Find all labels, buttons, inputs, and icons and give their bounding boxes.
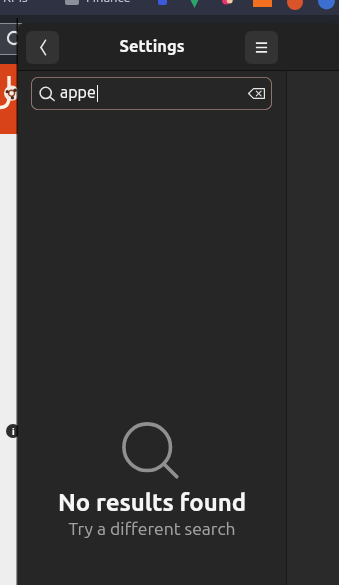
staticText: Try a different search xyxy=(52,519,252,539)
button[interactable]: Menu xyxy=(245,31,278,64)
staticText: KPIs xyxy=(3,0,28,4)
button[interactable]: Back xyxy=(26,31,59,64)
staticText: Finance xyxy=(86,0,131,4)
button[interactable]: appe xyxy=(31,77,272,110)
staticText: appe xyxy=(60,83,96,101)
staticText: Settings xyxy=(92,37,212,55)
staticText: i xyxy=(12,425,15,437)
staticText: No results found xyxy=(52,489,252,516)
